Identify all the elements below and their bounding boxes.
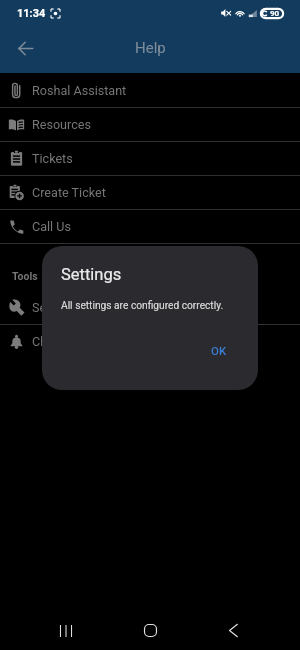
staticText: OK xyxy=(211,344,227,357)
button[interactable]: Back xyxy=(8,31,42,65)
button[interactable]: Create Ticket xyxy=(0,176,300,209)
staticText: All settings are configured correctly. xyxy=(61,300,224,312)
button[interactable]: Back xyxy=(213,609,256,650)
button[interactable]: Recent apps xyxy=(44,609,87,650)
staticText: Settings xyxy=(61,265,122,284)
staticText: Help xyxy=(135,39,166,57)
staticText: Call Us xyxy=(32,219,71,234)
button[interactable]: Tickets xyxy=(0,142,300,175)
staticText: Check for Updates xyxy=(32,334,136,349)
staticText: 11:34 xyxy=(17,7,46,20)
button[interactable]: Check for Updates xyxy=(0,325,300,358)
staticText: Tools xyxy=(12,270,38,282)
button[interactable]: Roshal Assistant xyxy=(0,74,300,107)
staticText: Settings xyxy=(32,300,78,315)
staticText: Roshal Assistant xyxy=(32,83,127,98)
staticText: Tickets xyxy=(32,151,73,166)
button[interactable]: Resources xyxy=(0,108,300,141)
staticText: 90 xyxy=(270,9,280,18)
button[interactable]: Settings xyxy=(0,291,300,324)
button[interactable]: Call Us xyxy=(0,210,300,243)
button[interactable]: Home xyxy=(129,609,172,650)
staticText: Resources xyxy=(32,117,91,132)
staticText: Create Ticket xyxy=(32,185,106,200)
button[interactable]: OK xyxy=(203,339,235,362)
